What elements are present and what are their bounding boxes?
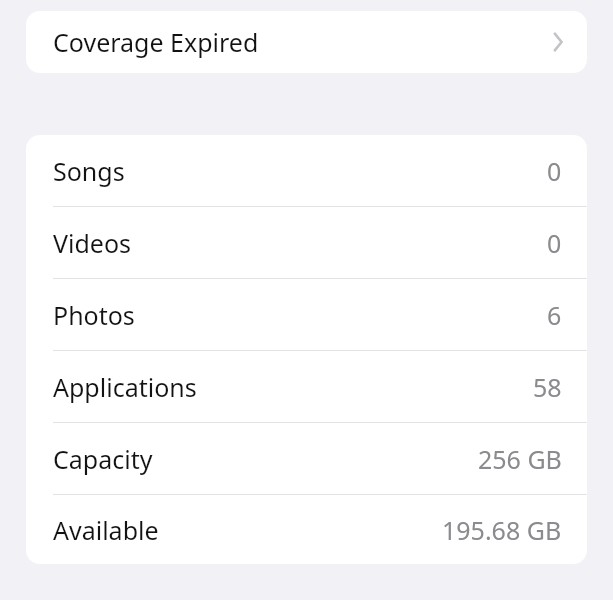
staticText: Photos [53, 298, 135, 332]
other: Coverage details [550, 29, 566, 55]
staticText: Videos [53, 226, 132, 260]
button[interactable]: Photos [26, 279, 587, 351]
staticText: Capacity [53, 442, 153, 476]
staticText: Applications [53, 370, 197, 404]
staticText: 256 GB [478, 442, 562, 476]
button[interactable]: Videos [26, 207, 587, 279]
button[interactable]: Coverage Expired [26, 11, 587, 73]
staticText: Songs [53, 154, 125, 188]
button[interactable]: Capacity [26, 423, 587, 495]
staticText: Coverage Expired [53, 25, 259, 59]
button[interactable]: Applications [26, 351, 587, 423]
staticText: 0 [547, 154, 562, 188]
button[interactable]: Songs [26, 135, 587, 207]
staticText: 58 [533, 370, 562, 404]
staticText: 195.68 GB [442, 513, 562, 547]
staticText: 6 [547, 298, 562, 332]
staticText: Available [53, 513, 159, 547]
staticText: 0 [547, 226, 562, 260]
button[interactable]: Available [26, 495, 587, 564]
